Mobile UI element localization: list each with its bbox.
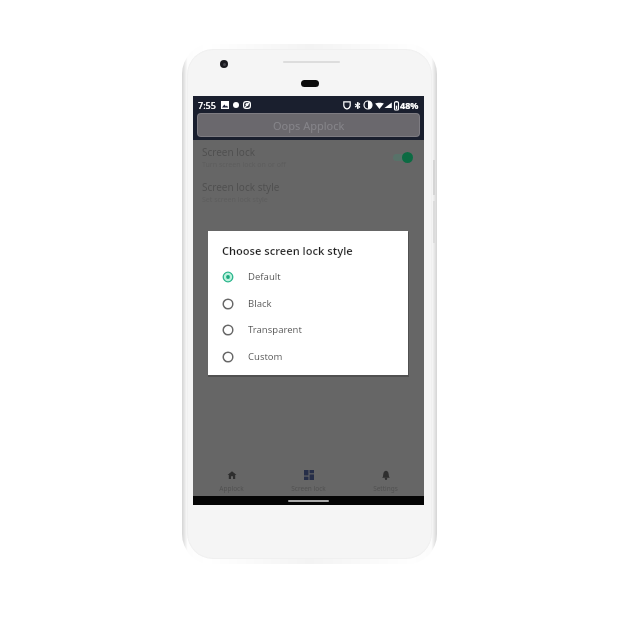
- button[interactable]: Black: [208, 290, 408, 317]
- button[interactable]: Default: [208, 263, 408, 290]
- button[interactable]: Custom: [208, 343, 408, 370]
- button[interactable]: Screen lock: [270, 465, 347, 497]
- staticText: Default: [248, 270, 281, 283]
- staticText: Oops Applock: [273, 118, 345, 133]
- staticText: 48%: [400, 99, 419, 111]
- button[interactable]: Settings: [347, 465, 424, 497]
- staticText: Custom: [248, 350, 283, 363]
- staticText: Screen lock style: [202, 180, 280, 194]
- staticText: Screen lock: [291, 484, 326, 493]
- staticText: Black: [248, 297, 272, 310]
- staticText: Settings: [373, 484, 398, 493]
- button[interactable]: Screen lock: [193, 140, 424, 175]
- button[interactable]: Oops Applock: [198, 114, 419, 136]
- button[interactable]: Applock: [193, 465, 270, 497]
- staticText: Applock: [219, 484, 244, 493]
- staticText: 7:55: [198, 99, 216, 111]
- staticText: Screen lock: [202, 145, 256, 159]
- button[interactable]: Transparent: [208, 316, 408, 343]
- staticText: Choose screen lock style: [222, 243, 353, 258]
- staticText: Transparent: [248, 323, 302, 336]
